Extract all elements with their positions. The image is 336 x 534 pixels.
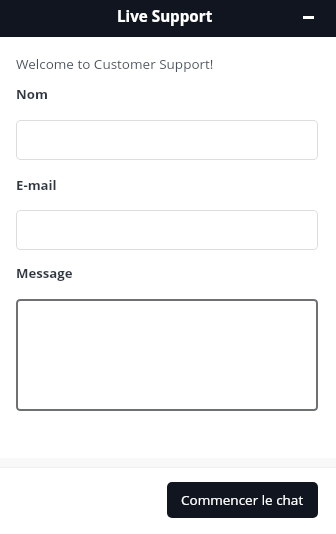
staticText: Live Support [117, 6, 213, 27]
staticText: Message [16, 264, 73, 282]
button[interactable] [16, 120, 318, 160]
button[interactable] [16, 210, 318, 250]
staticText: Nom [16, 85, 48, 103]
button[interactable] [16, 299, 318, 411]
staticText: Welcome to Customer Support! [16, 55, 214, 73]
staticText: E-mail [16, 176, 57, 194]
button[interactable]: Minimize [297, 8, 319, 30]
button[interactable]: Commencer le chat [167, 482, 318, 518]
staticText: Commencer le chat [181, 491, 304, 509]
